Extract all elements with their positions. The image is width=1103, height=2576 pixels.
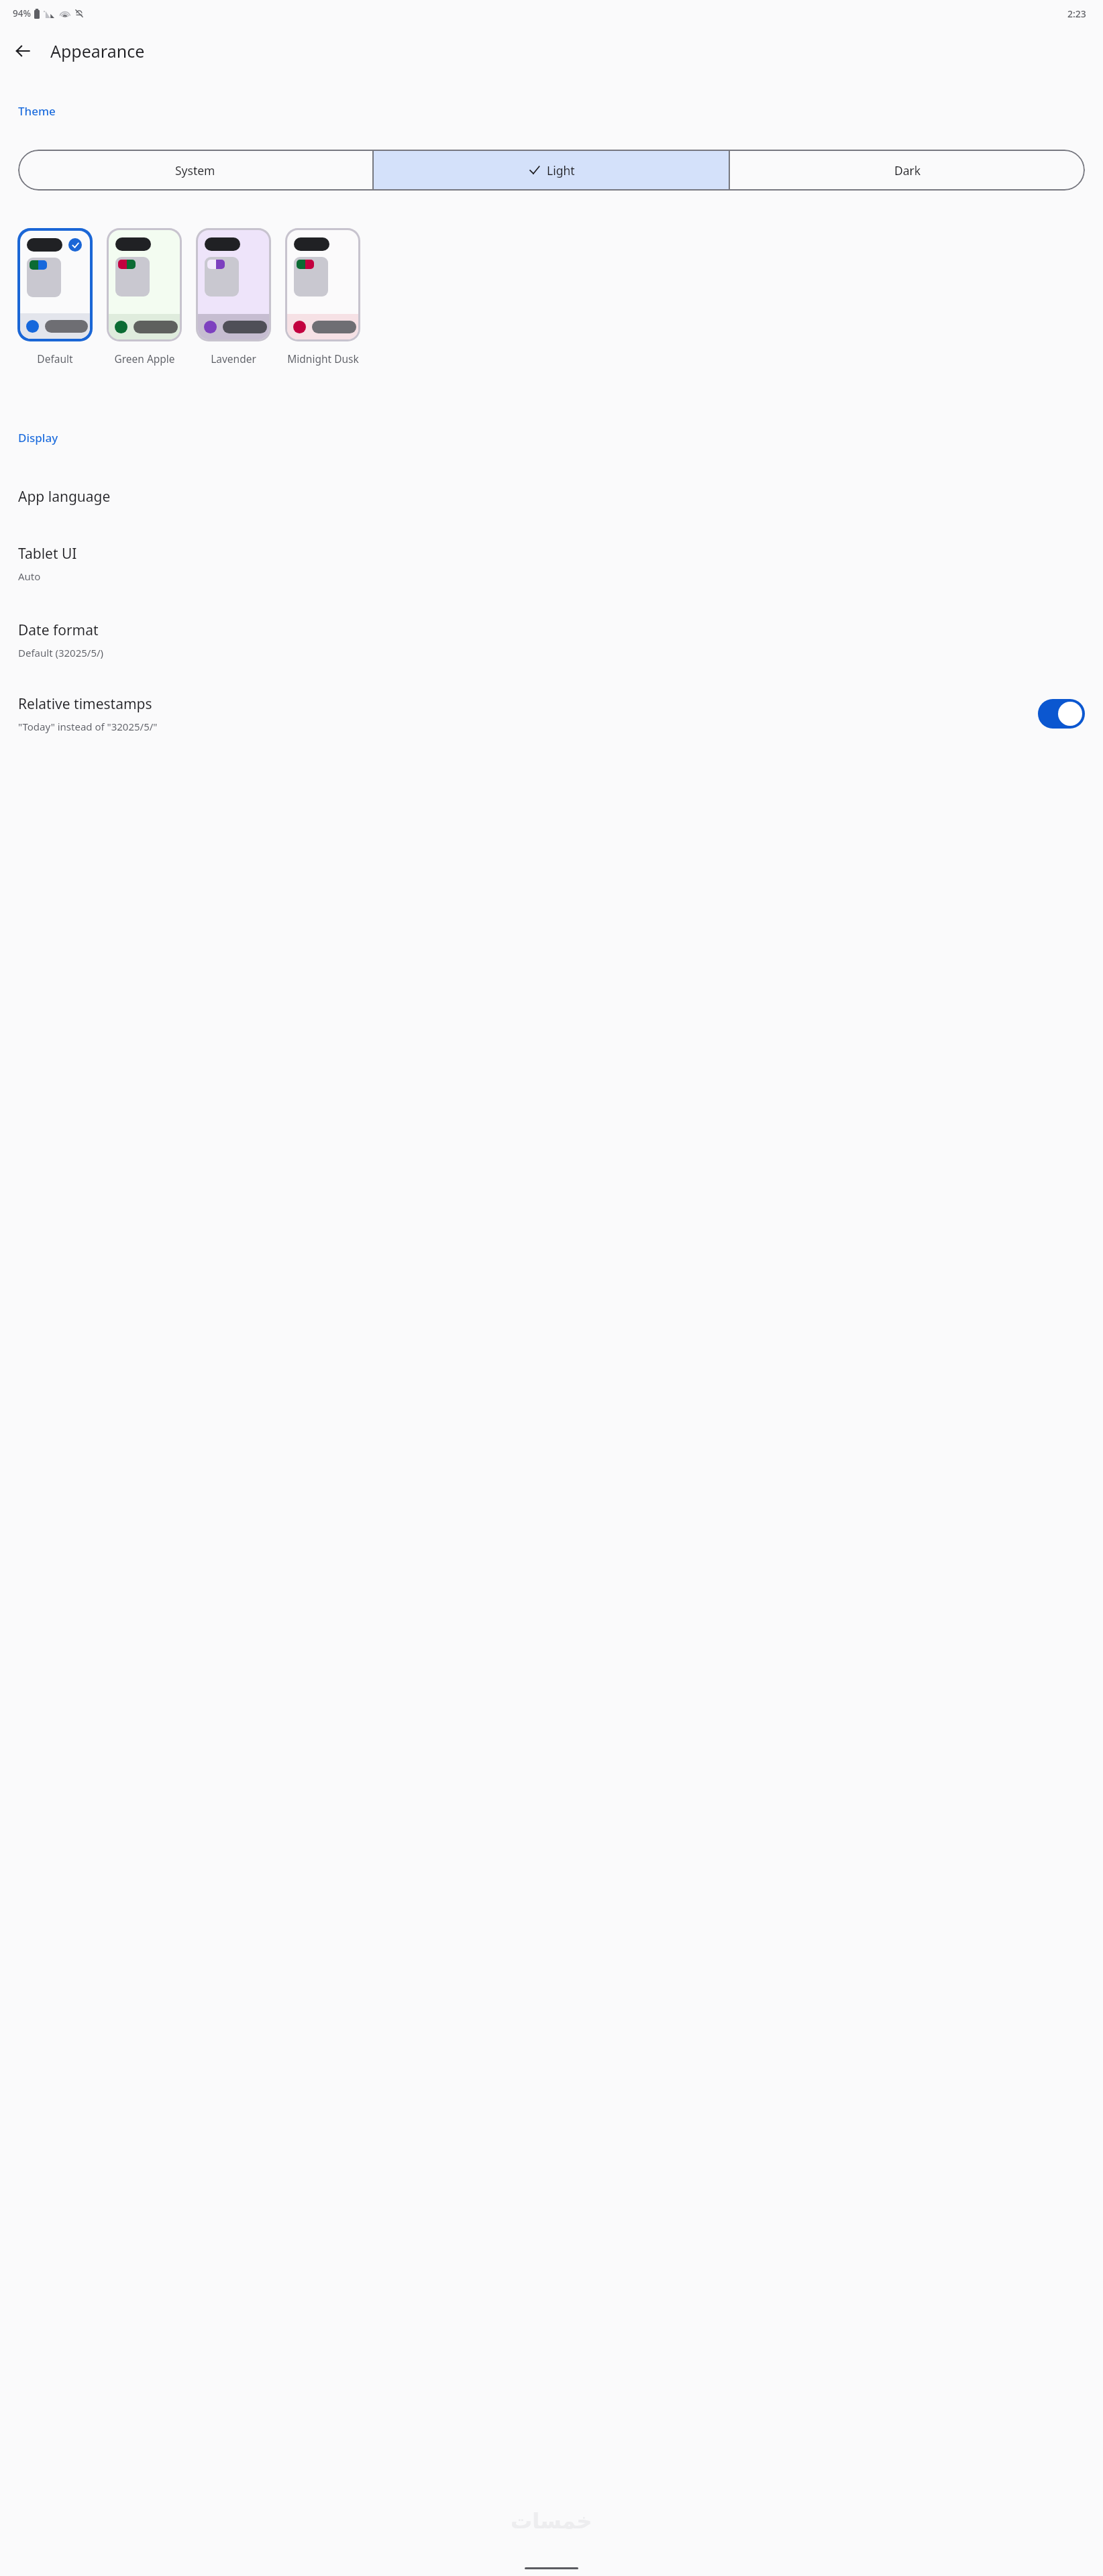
staticText: Dark [894,162,921,178]
staticText: Green Apple [114,352,175,366]
button[interactable]: Default [17,228,93,366]
staticText: Tablet UI [18,544,77,563]
staticText: Auto [18,570,41,583]
button[interactable]: Dark [730,150,1085,191]
staticText: 2:23 [1067,7,1086,20]
staticText: App language [18,487,111,506]
staticText: Appearance [50,40,145,62]
button[interactable]: Midnight Dusk [285,228,360,366]
button[interactable]: System [18,150,372,191]
staticText: Lavender [211,352,256,366]
staticText: Default [37,352,73,366]
staticText: Theme [18,103,56,119]
button[interactable]: Green Apple [107,228,182,366]
staticText: خمسات [511,2508,592,2533]
staticText: Default (32025/5/) [18,646,104,659]
staticText: "Today" instead of "32025/5/" [18,720,158,733]
button[interactable]: Light [374,150,729,191]
staticText: Date format [18,621,99,640]
staticText: Midnight Dusk [287,352,359,366]
staticText: Light [547,162,575,178]
button[interactable]: Date format [0,608,1103,672]
staticText: Display [18,430,58,445]
button[interactable]: Back [7,35,39,67]
staticText: 94% [13,7,31,19]
button[interactable]: Tablet UI [0,532,1103,595]
button[interactable]: App language [0,475,1103,519]
button[interactable]: Relative timestamps toggle [1038,699,1085,729]
staticText: System [175,162,215,178]
button[interactable]: Relative timestamps [0,685,1103,743]
staticText: Relative timestamps [18,694,152,714]
button[interactable]: Lavender [196,228,271,366]
